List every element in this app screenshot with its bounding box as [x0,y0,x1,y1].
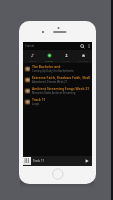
button[interactable]: The Bachelor and [23,63,92,74]
staticText: The Bachelor and [32,64,61,68]
staticText: Extreme Faith, Shadows Faith, Shall [32,75,91,79]
staticText: Playlists [79,59,89,62]
staticText: Abandoned Dreams Week 21 [32,80,68,84]
staticText: Loops [32,102,40,106]
button[interactable]: Artists [58,50,75,63]
button[interactable]: Songs [23,50,41,63]
button[interactable]: Play [82,156,92,166]
staticText: Track 11 [33,159,45,163]
button[interactable]: Albums [41,50,58,63]
button[interactable]: Playlists [75,50,92,63]
button[interactable]: Track 11 [23,96,92,107]
staticText: Artists [63,59,71,62]
staticText: Moments Radio Ambient Streaming [32,91,76,95]
staticText: Track 11 [32,97,46,101]
button[interactable]: More options [86,42,92,50]
button[interactable]: Ambient Streaming Songs Week 21 [23,85,92,96]
button[interactable]: Extreme Faith, Shadows Faith, Shall [23,74,92,85]
staticText: Ambient Streaming Songs Week 21 [32,86,90,90]
staticText: Cancel [25,44,35,48]
staticText: Coming Up Daily, the Bachelorette [32,69,74,73]
staticText: Songs [29,59,36,62]
button[interactable]: Cancel [23,42,37,50]
staticText: Albums [45,59,54,62]
button[interactable]: Search [79,42,86,50]
